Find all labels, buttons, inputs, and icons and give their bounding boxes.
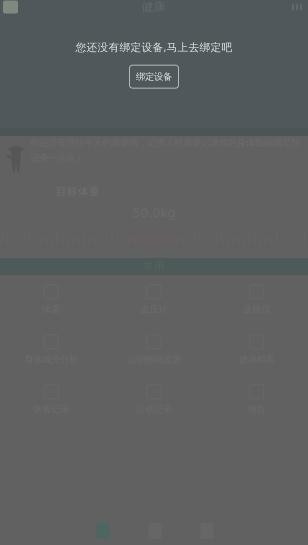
- button[interactable]: 绑定设备: [129, 65, 178, 88]
- button[interactable]: Home: [77, 510, 129, 545]
- button[interactable]: More: [289, 1, 305, 13]
- button[interactable]: Profile: [3, 0, 18, 13]
- staticText: 您还没有绑定设备,马上去绑定吧: [75, 40, 232, 54]
- staticText: 50.0kg: [132, 203, 175, 221]
- staticText: 健康: [141, 0, 165, 14]
- staticText: 目标体重: [56, 185, 100, 198]
- staticText: 绑定设备: [136, 71, 172, 82]
